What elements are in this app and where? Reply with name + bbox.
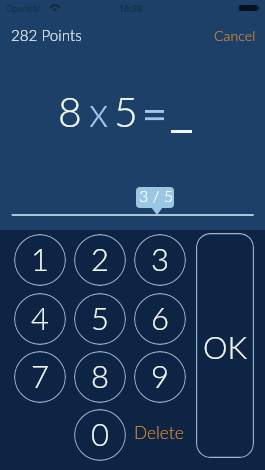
staticText: 282 Points bbox=[11, 26, 82, 44]
button[interactable]: 1 bbox=[14, 234, 66, 286]
button[interactable]: 4 bbox=[14, 293, 66, 345]
staticText: OK bbox=[203, 328, 248, 365]
button[interactable]: 8 bbox=[74, 351, 126, 403]
staticText: x bbox=[89, 87, 109, 136]
staticText: Delete bbox=[134, 422, 184, 443]
staticText: 9 bbox=[151, 357, 169, 394]
staticText: 3 bbox=[151, 240, 169, 277]
button[interactable]: OK bbox=[196, 233, 254, 458]
staticText: 6 bbox=[151, 299, 169, 336]
staticText: Operatör bbox=[6, 2, 40, 14]
staticText: 3 / 5 bbox=[139, 187, 174, 205]
button[interactable]: 6 bbox=[134, 293, 186, 345]
button[interactable]: 7 bbox=[14, 351, 66, 403]
staticText: 5 bbox=[114, 87, 138, 136]
staticText: 4 bbox=[31, 299, 49, 336]
button[interactable]: 0 bbox=[74, 409, 126, 461]
staticText: 2 bbox=[91, 240, 109, 277]
staticText: 16:39 bbox=[119, 2, 143, 15]
button[interactable]: 9 bbox=[134, 351, 186, 403]
staticText: 7 bbox=[31, 357, 49, 394]
staticText: Cancel bbox=[214, 27, 256, 44]
button[interactable]: 3 bbox=[134, 234, 186, 286]
button[interactable]: 2 bbox=[74, 234, 126, 286]
staticText: 8 bbox=[58, 87, 82, 136]
staticText: 5 bbox=[91, 299, 109, 336]
staticText: 0 bbox=[91, 415, 109, 452]
staticText: 8 bbox=[91, 357, 109, 394]
button[interactable]: Delete bbox=[129, 418, 189, 447]
button[interactable]: 5 bbox=[74, 293, 126, 345]
button[interactable]: Cancel bbox=[209, 23, 261, 48]
staticText: 1 bbox=[31, 240, 49, 277]
button[interactable]: 282 Points bbox=[6, 22, 87, 48]
